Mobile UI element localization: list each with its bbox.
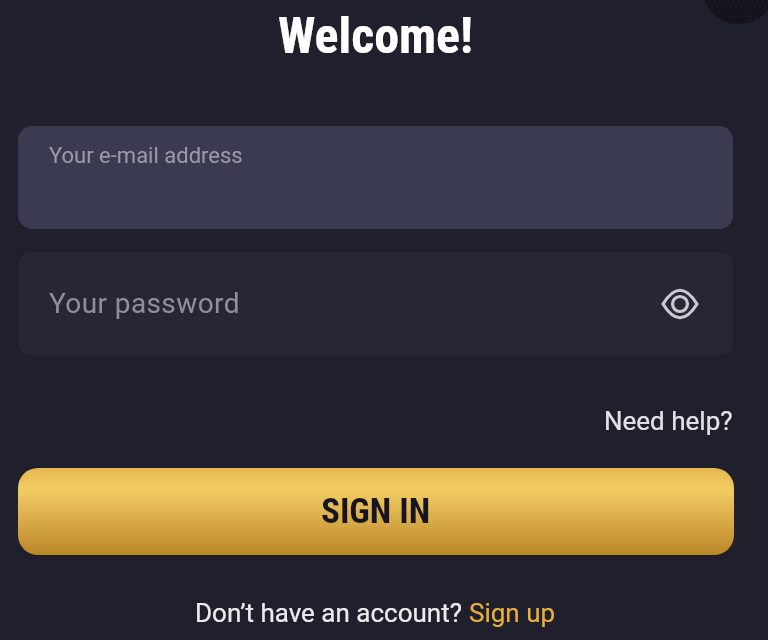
- button[interactable]: SIGN IN: [18, 468, 734, 555]
- staticText: Don’t have an account?: [195, 598, 469, 628]
- button[interactable]: Your password: [18, 252, 733, 355]
- button[interactable]: Don’t have an account?: [0, 598, 751, 628]
- button[interactable]: [661, 288, 699, 320]
- button[interactable]: Need help?: [604, 406, 733, 436]
- staticText: SIGN IN: [321, 491, 431, 532]
- staticText: Your password: [49, 287, 240, 320]
- staticText: Sign up: [469, 598, 556, 628]
- staticText: Welcome!: [0, 7, 751, 66]
- staticText: Your e-mail address: [49, 143, 243, 169]
- button[interactable]: Your e-mail address: [18, 126, 733, 229]
